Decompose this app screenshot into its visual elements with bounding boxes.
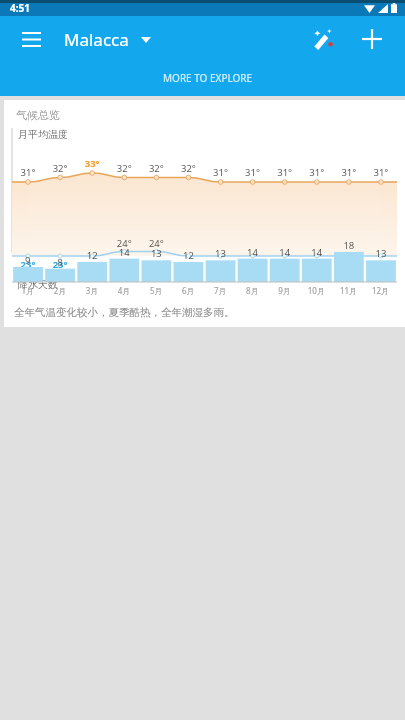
staticText: 4:51 — [10, 1, 30, 15]
staticText: 气候总览 — [16, 108, 60, 122]
staticText: MORE TO EXPLORE — [163, 71, 253, 85]
button[interactable]: Add location — [353, 20, 391, 58]
button[interactable]: Malacca — [64, 28, 151, 51]
staticText: 全年气温变化较小，夏季酷热，全年潮湿多雨。 — [14, 306, 235, 319]
staticText: Malacca — [64, 28, 129, 51]
button[interactable]: Open navigation menu — [14, 22, 48, 56]
button[interactable]: MORE TO EXPLORE — [10, 62, 405, 96]
button[interactable]: Magic / personalize — [305, 20, 343, 58]
